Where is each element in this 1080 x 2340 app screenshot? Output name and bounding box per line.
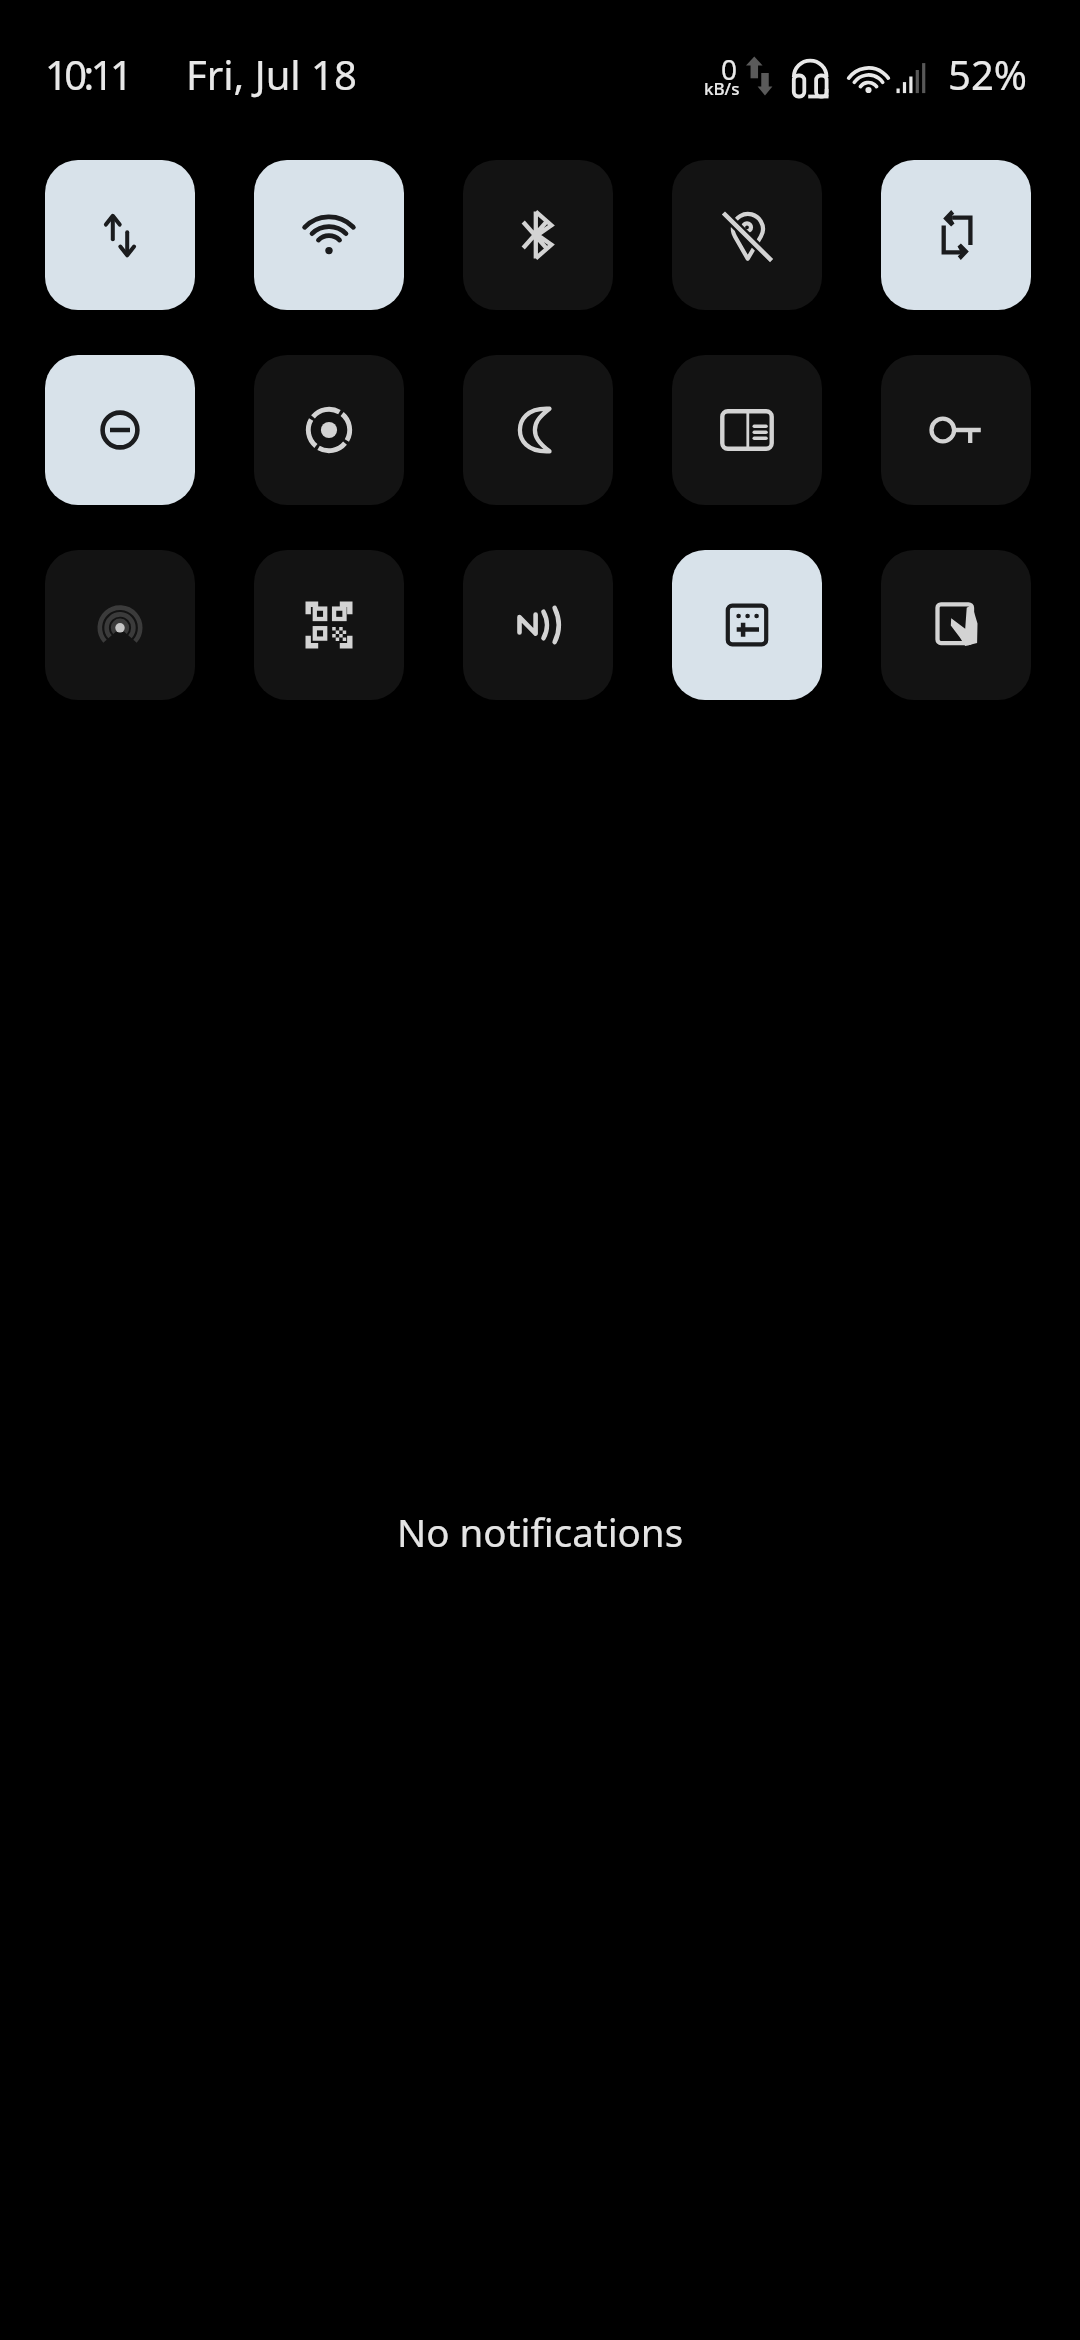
button[interactable]: Dark mode (463, 355, 613, 505)
button[interactable]: NFC (463, 550, 613, 700)
button[interactable]: One-handed mode (881, 550, 1031, 700)
button[interactable]: Scan QR code (254, 550, 404, 700)
staticText: 10:11 (45, 47, 130, 101)
button[interactable]: Edit buttons (672, 550, 822, 700)
staticText: 0 (721, 50, 738, 88)
staticText: Fri, Jul 18 (186, 47, 357, 101)
button[interactable]: Mobile data (45, 160, 195, 310)
staticText: 52% (948, 47, 1027, 101)
button[interactable]: Bluetooth (463, 160, 613, 310)
button[interactable]: Multi window (672, 355, 822, 505)
staticText: kB/s (704, 77, 740, 100)
button[interactable]: Wi-Fi (254, 160, 404, 310)
button[interactable]: Power saving (254, 355, 404, 505)
button[interactable]: Location off (672, 160, 822, 310)
staticText: No notifications (397, 1506, 684, 1558)
button[interactable]: Do not disturb (45, 355, 195, 505)
button[interactable]: Secure Wi-Fi (881, 355, 1031, 505)
button[interactable]: Auto rotate (881, 160, 1031, 310)
button[interactable]: Smart View (45, 550, 195, 700)
